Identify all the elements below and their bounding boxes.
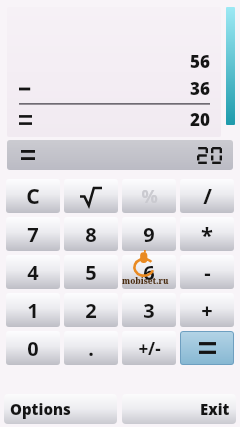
staticText: 2 [85, 297, 97, 324]
staticText: - [204, 259, 211, 286]
button[interactable]: Result 20 [7, 140, 233, 170]
button[interactable]: Square root [64, 179, 118, 213]
button[interactable]: . [64, 331, 118, 365]
button[interactable]: 7 [6, 217, 60, 251]
staticText: 8 [85, 221, 97, 248]
staticText: 1 [27, 297, 39, 324]
button[interactable]: Exit [122, 394, 236, 424]
staticText: mobiset.ru [122, 275, 169, 286]
button[interactable]: 9 [122, 217, 176, 251]
staticText: 3 [143, 297, 155, 324]
staticText: . [88, 335, 94, 362]
staticText: 4 [27, 259, 39, 286]
staticText: 7 [27, 221, 39, 248]
button[interactable]: C [6, 179, 60, 213]
staticText: % [141, 184, 158, 209]
button[interactable]: 56 [7, 7, 221, 137]
staticText: 5 [85, 259, 97, 286]
button[interactable]: 4 [6, 255, 60, 289]
button[interactable]: 6 [122, 255, 176, 289]
staticText: 36 [190, 77, 210, 100]
staticText: 9 [143, 221, 155, 248]
staticText: C [26, 182, 40, 211]
button: % [122, 179, 176, 213]
button[interactable]: 3 [122, 293, 176, 327]
button[interactable]: 8 [64, 217, 118, 251]
staticText: 6 [143, 259, 155, 286]
staticText: 0 [27, 335, 39, 362]
staticText: +/- [138, 337, 161, 360]
staticText: / [203, 182, 212, 211]
staticText: + [201, 297, 213, 324]
button[interactable]: 5 [64, 255, 118, 289]
button[interactable]: + [180, 293, 234, 327]
button[interactable]: 2 [64, 293, 118, 327]
button[interactable]: Options [4, 394, 117, 424]
button[interactable]: +/- [122, 331, 176, 365]
button[interactable]: - [180, 255, 234, 289]
button[interactable]: * [180, 217, 234, 251]
button[interactable]: Equals [180, 331, 234, 365]
staticText: Exit [200, 399, 230, 419]
staticText: * [201, 219, 213, 249]
button[interactable]: 1 [6, 293, 60, 327]
button[interactable]: / [180, 179, 234, 213]
staticText: 20 [190, 108, 210, 131]
staticText: 56 [190, 50, 210, 73]
button[interactable]: 0 [6, 331, 60, 365]
staticText: Options [10, 399, 71, 419]
